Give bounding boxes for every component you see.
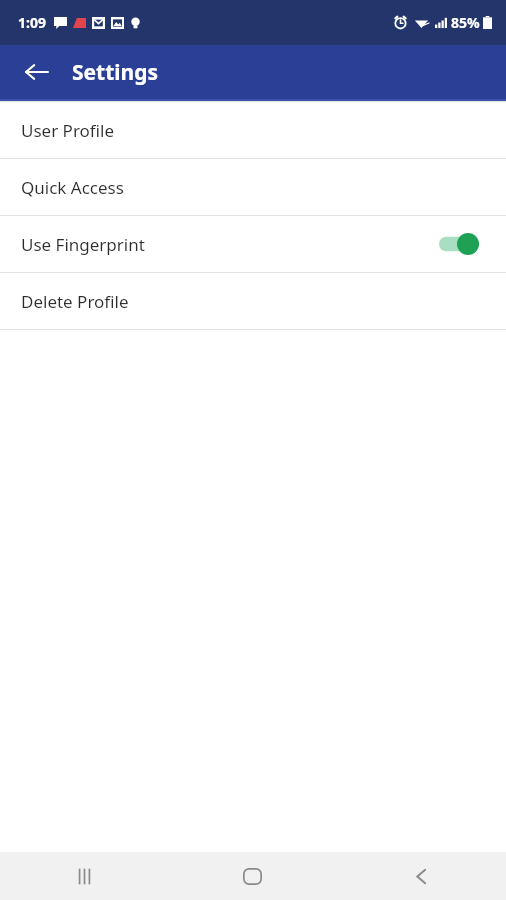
staticText: 1:09: [18, 13, 46, 32]
staticText: 85%: [451, 13, 480, 32]
staticText: Delete Profile: [21, 290, 129, 313]
button[interactable]: Quick Access: [0, 159, 506, 215]
button[interactable]: Recent apps: [0, 852, 168, 900]
staticText: Settings: [72, 58, 159, 87]
button[interactable]: Back: [14, 50, 58, 94]
staticText: Use Fingerprint: [21, 233, 145, 256]
button[interactable]: Back: [337, 852, 506, 900]
staticText: User Profile: [21, 119, 115, 142]
button[interactable]: User Profile: [0, 102, 506, 158]
staticText: Quick Access: [21, 176, 124, 199]
button[interactable]: Home: [168, 852, 337, 900]
button[interactable]: Use Fingerprint toggle: [439, 233, 479, 255]
button[interactable]: Delete Profile: [0, 273, 506, 329]
button[interactable]: Use Fingerprint: [0, 216, 506, 272]
